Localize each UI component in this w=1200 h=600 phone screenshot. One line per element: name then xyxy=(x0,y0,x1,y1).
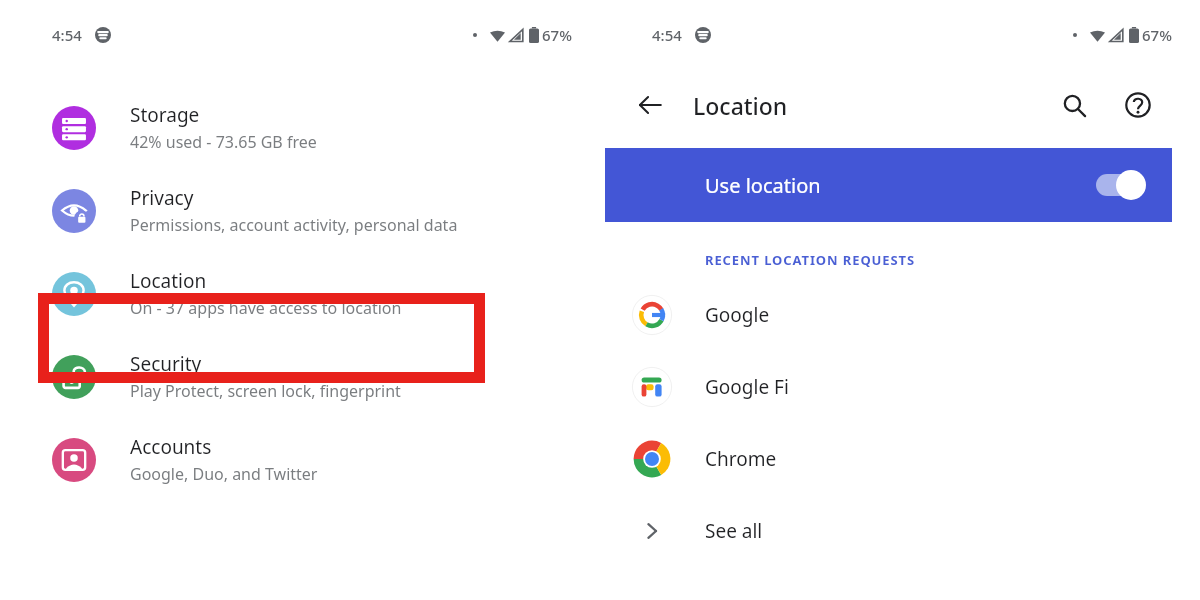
button[interactable]: See all xyxy=(600,509,1200,553)
staticText: Use location xyxy=(705,172,1094,199)
staticText: 4:54 xyxy=(52,25,82,45)
staticText: Google Fi xyxy=(705,374,789,400)
staticText: Location xyxy=(693,90,788,121)
staticText: Google, Duo, and Twitter xyxy=(130,463,318,485)
staticText: Google xyxy=(705,302,770,328)
button[interactable]: Security xyxy=(0,351,600,402)
staticText: 4:54 xyxy=(652,25,682,45)
button[interactable]: Accounts xyxy=(0,434,600,485)
staticText: 42% used - 73.65 GB free xyxy=(130,131,317,153)
staticText: Play Protect, screen lock, fingerprint xyxy=(130,380,401,402)
staticText: Storage xyxy=(130,102,200,128)
button[interactable]: Chrome xyxy=(600,437,1200,481)
button[interactable]: Help xyxy=(1116,83,1160,127)
staticText: Chrome xyxy=(705,446,777,472)
button[interactable]: Privacy xyxy=(0,185,600,236)
staticText: 67% xyxy=(1142,25,1172,45)
button[interactable]: Storage xyxy=(0,102,600,153)
staticText: Location xyxy=(130,268,207,294)
button[interactable]: Search xyxy=(1052,83,1096,127)
button[interactable]: Google xyxy=(600,293,1200,337)
button[interactable]: Location xyxy=(0,268,600,319)
staticText: Privacy xyxy=(130,185,194,211)
staticText: See all xyxy=(705,518,763,544)
button[interactable]: Use location xyxy=(605,148,1172,222)
staticText: RECENT LOCATION REQUESTS xyxy=(705,251,916,269)
staticText: Permissions, account activity, personal … xyxy=(130,214,458,236)
button[interactable]: Google Fi xyxy=(600,365,1200,409)
staticText: Security xyxy=(130,351,202,377)
staticText: Accounts xyxy=(130,434,212,460)
button[interactable]: Back xyxy=(628,83,672,127)
staticText: On - 37 apps have access to location xyxy=(130,297,402,319)
staticText: 67% xyxy=(542,25,572,45)
